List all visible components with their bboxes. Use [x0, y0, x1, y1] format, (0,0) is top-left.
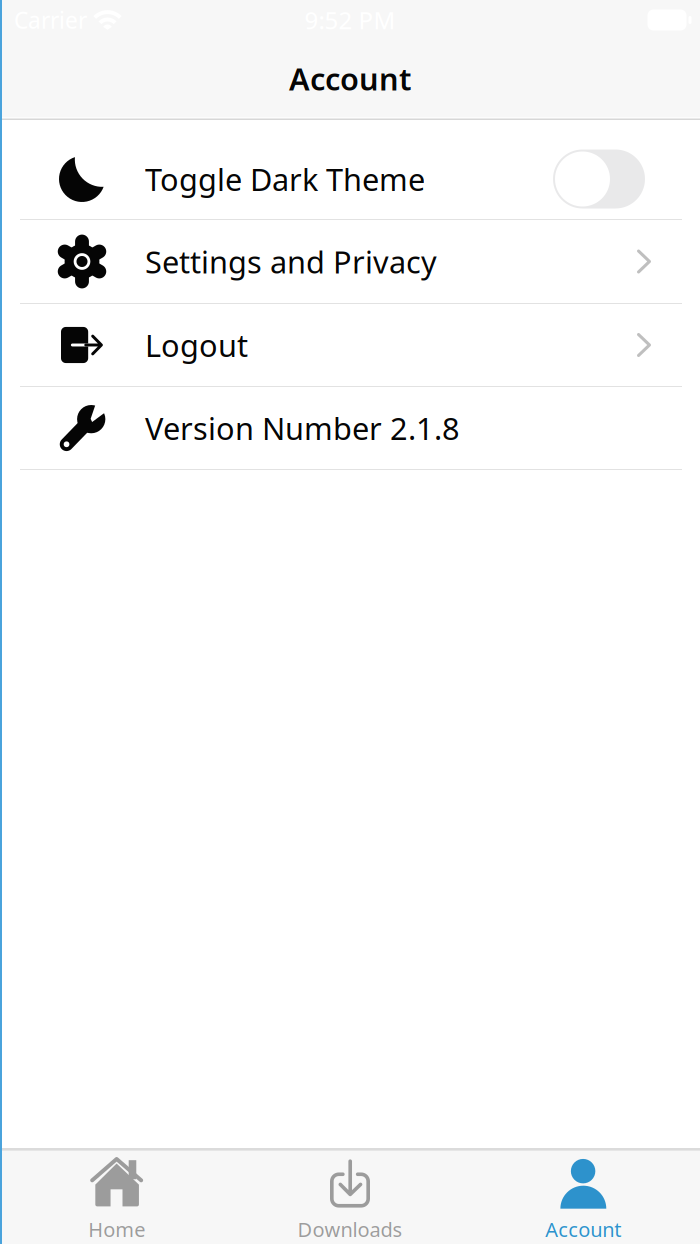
button[interactable]: Home — [0, 1148, 233, 1244]
button[interactable]: Settings and Privacy — [0, 220, 700, 304]
staticText: Home — [88, 1216, 145, 1243]
staticText: Version Number 2.1.8 — [145, 408, 460, 448]
staticText: Account — [289, 58, 411, 99]
button[interactable]: Account — [467, 1148, 700, 1244]
button[interactable]: Logout — [0, 304, 700, 387]
staticText: Downloads — [297, 1216, 402, 1243]
staticText: Toggle Dark Theme — [145, 159, 425, 199]
button[interactable]: Toggle Dark Theme — [0, 139, 700, 220]
staticText: Settings and Privacy — [145, 241, 437, 282]
staticText: Account — [545, 1216, 621, 1243]
button[interactable]: Downloads — [233, 1148, 467, 1244]
staticText: Logout — [145, 325, 248, 365]
button[interactable]: Version Number 2.1.8 — [0, 387, 700, 470]
